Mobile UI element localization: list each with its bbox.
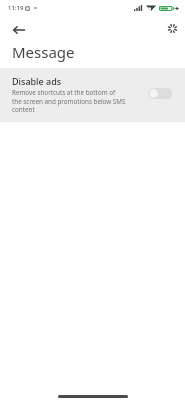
button[interactable]: Disable ads (0, 68, 185, 122)
button[interactable]: Loading (160, 16, 184, 40)
staticText: 11:19 (8, 4, 24, 12)
staticText: Remove shortcuts at the bottom of the sc… (12, 88, 126, 113)
staticText: Disable ads (12, 75, 62, 87)
button[interactable]: Disable ads toggle (148, 88, 172, 99)
staticText: Message (12, 42, 75, 62)
button[interactable]: Back (7, 18, 31, 42)
